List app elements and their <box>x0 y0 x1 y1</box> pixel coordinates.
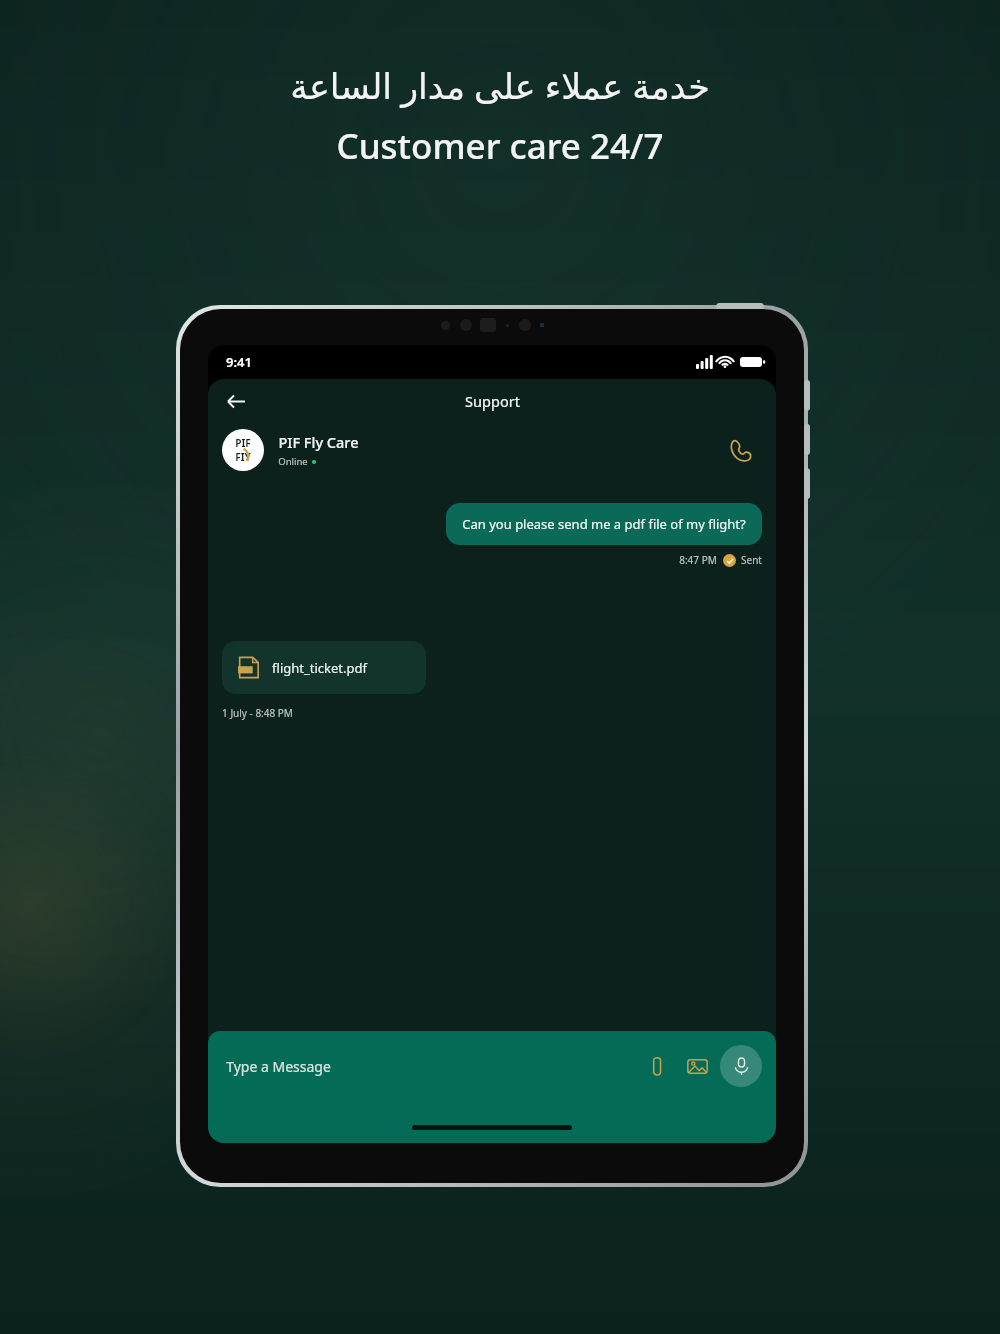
staticText: 8:47 PM <box>679 553 717 567</box>
staticText: Type a Message <box>226 1057 331 1076</box>
button[interactable]: PIF <box>208 423 776 477</box>
button[interactable]: Back <box>216 381 256 421</box>
button[interactable]: Call <box>720 430 760 470</box>
staticText: خدمة عملاء على مدار الساعة <box>290 62 710 110</box>
button[interactable]: Send image <box>680 1049 714 1083</box>
staticText: PIF <box>235 436 251 450</box>
button[interactable]: Voice message <box>720 1045 762 1087</box>
button[interactable]: Attach file <box>640 1049 674 1083</box>
button[interactable]: Can you please send me a pdf file of my … <box>446 503 762 545</box>
staticText: Online <box>278 455 308 468</box>
staticText: FIY <box>235 450 251 464</box>
staticText: 1 July - 8:48 PM <box>222 706 293 720</box>
staticText: flight_ticket.pdf <box>272 659 367 677</box>
staticText: 9:41 <box>226 353 252 371</box>
staticText: Customer care 24/7 <box>336 122 664 170</box>
button[interactable]: Type a Message <box>226 1057 640 1076</box>
staticText: PIF Fly Care <box>278 432 359 452</box>
staticText: Support <box>465 391 520 411</box>
staticText: Can you please send me a pdf file of my … <box>462 515 746 533</box>
staticText: Sent <box>741 553 762 567</box>
button[interactable]: flight_ticket.pdf <box>222 641 426 694</box>
